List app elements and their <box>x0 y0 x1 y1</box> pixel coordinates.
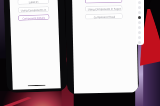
staticText: Component Visual <box>93 15 116 18</box>
staticText: Using Components in Pages <box>18 7 49 12</box>
staticText: Using Components in Pages <box>87 7 121 10</box>
button[interactable]: Component Visual <box>85 14 122 19</box>
staticText: Label 01 <box>29 0 39 3</box>
button[interactable]: Tool 5 <box>138 21 141 24</box>
button[interactable]: Tool 3 <box>138 11 141 14</box>
button[interactable]: Label 01 <box>18 0 49 5</box>
button[interactable]: Tool 7 <box>138 31 141 34</box>
button[interactable]: Tool 4 <box>138 16 141 19</box>
button[interactable]: Using Components in Pages <box>18 6 49 13</box>
button[interactable]: Tool 6 <box>138 26 141 29</box>
staticText: Component Details <box>22 16 45 19</box>
button[interactable]: Tool 8 <box>138 36 141 39</box>
button[interactable]: Tool 9 <box>138 41 141 44</box>
button[interactable]: Tool 2 <box>138 6 141 9</box>
button[interactable] <box>85 0 122 3</box>
button[interactable]: Component Details <box>18 14 49 21</box>
button[interactable]: Tool 1 <box>138 1 141 4</box>
button[interactable]: Using Components in Pages <box>85 6 122 11</box>
